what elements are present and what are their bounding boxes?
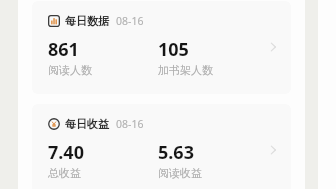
staticText: 每日收益 xyxy=(65,117,109,131)
staticText: 08-16 xyxy=(116,117,144,131)
button[interactable]: 查看详情 xyxy=(267,41,279,53)
staticText: 105 xyxy=(158,37,189,62)
staticText: 7.40 xyxy=(48,140,84,165)
staticText: 每日数据 xyxy=(65,14,109,28)
staticText: 总收益 xyxy=(48,166,81,180)
staticText: 阅读收益 xyxy=(158,166,202,180)
staticText: 5.63 xyxy=(158,140,194,165)
button[interactable]: 每日收益 xyxy=(32,104,291,189)
staticText: 08-16 xyxy=(116,14,144,28)
staticText: 加书架人数 xyxy=(158,63,213,77)
staticText: 861 xyxy=(48,37,79,62)
staticText: 阅读人数 xyxy=(48,63,92,77)
button[interactable]: 查看详情 xyxy=(267,144,279,156)
button[interactable]: 每日数据 xyxy=(32,1,291,94)
